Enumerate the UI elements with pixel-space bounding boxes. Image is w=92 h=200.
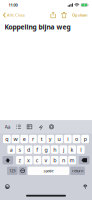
button[interactable]: h xyxy=(51,145,58,154)
button[interactable]: Wis xyxy=(79,156,89,164)
staticText: s xyxy=(18,146,21,153)
button[interactable]: Alle Clous xyxy=(0,11,25,19)
staticText: k xyxy=(71,146,74,153)
button[interactable]: v xyxy=(42,156,50,164)
button[interactable]: x xyxy=(25,156,32,164)
button[interactable]: Verwijder xyxy=(58,10,70,19)
staticText: 123 xyxy=(9,168,15,173)
button[interactable]: b xyxy=(51,156,58,164)
staticText: u xyxy=(57,135,60,143)
staticText: q xyxy=(5,135,8,143)
button[interactable]: k xyxy=(68,145,76,154)
staticText: l xyxy=(80,146,81,153)
button[interactable]: w xyxy=(12,135,19,143)
button[interactable]: u xyxy=(55,135,63,143)
staticText: e xyxy=(23,135,26,143)
staticText: o xyxy=(75,135,78,143)
staticText: f xyxy=(36,146,38,153)
button[interactable]: s xyxy=(16,145,24,154)
button[interactable]: Lijst xyxy=(13,122,24,131)
button[interactable]: m xyxy=(68,156,76,164)
button[interactable]: p xyxy=(81,135,89,143)
staticText: 11:00 xyxy=(8,2,17,8)
staticText: c xyxy=(36,157,39,164)
staticText: return xyxy=(72,168,83,173)
button[interactable]: a xyxy=(7,145,15,154)
button[interactable]: d xyxy=(25,145,32,154)
button[interactable]: Opslaan xyxy=(70,10,92,20)
button[interactable]: o xyxy=(73,135,80,143)
staticText: h xyxy=(53,146,56,153)
staticText: v xyxy=(44,157,47,164)
button[interactable]: spatie xyxy=(28,167,69,175)
button[interactable]: f xyxy=(33,145,41,154)
button[interactable]: Deel xyxy=(48,10,58,19)
button[interactable]: y xyxy=(46,135,54,143)
staticText: spatie xyxy=(43,168,53,173)
button[interactable]: Camera xyxy=(46,122,57,131)
staticText: t xyxy=(41,135,43,143)
button[interactable]: c xyxy=(33,156,41,164)
staticText: z xyxy=(18,157,21,164)
button[interactable]: z xyxy=(16,156,24,164)
staticText: Opslaan xyxy=(72,12,88,18)
button[interactable]: 123 xyxy=(7,167,18,175)
button[interactable]: Tabel xyxy=(24,122,35,131)
staticText: r xyxy=(32,135,34,143)
button[interactable]: Bijlage xyxy=(35,122,46,131)
button[interactable]: Shift xyxy=(2,156,13,164)
staticText: d xyxy=(27,146,30,153)
button[interactable]: Toetsenbord xyxy=(19,167,27,175)
button[interactable]: n xyxy=(59,156,67,164)
button[interactable]: Dicteren xyxy=(80,183,90,190)
staticText: j xyxy=(63,146,64,153)
button[interactable]: l xyxy=(77,145,85,154)
staticText: x xyxy=(27,157,30,164)
button[interactable]: Aa xyxy=(2,122,13,131)
staticText: b xyxy=(53,157,56,164)
button[interactable]: j xyxy=(59,145,67,154)
button[interactable]: return xyxy=(70,167,85,175)
staticText: Alle Clous xyxy=(7,12,25,18)
button[interactable]: q xyxy=(3,135,11,143)
staticText: Aa xyxy=(4,123,10,130)
button[interactable]: t xyxy=(38,135,45,143)
staticText: w xyxy=(13,135,17,143)
staticText: m xyxy=(70,157,75,164)
button[interactable]: i xyxy=(64,135,72,143)
button[interactable]: Emoji xyxy=(2,183,13,191)
staticText: g xyxy=(44,146,47,153)
staticText: p xyxy=(84,135,87,143)
button[interactable]: r xyxy=(29,135,37,143)
staticText: y xyxy=(49,135,52,143)
staticText: i xyxy=(67,135,68,143)
staticText: Koppeling bijna weg xyxy=(4,22,70,31)
staticText: n xyxy=(62,157,65,164)
staticText: a xyxy=(10,146,13,153)
button[interactable]: e xyxy=(20,135,28,143)
button[interactable]: g xyxy=(42,145,50,154)
